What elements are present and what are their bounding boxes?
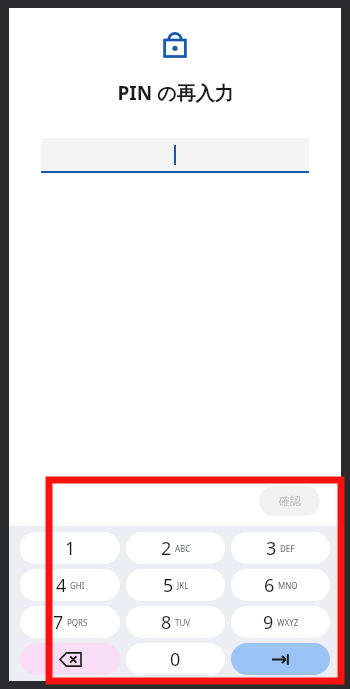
staticText: ABC	[175, 543, 191, 554]
button[interactable]: 0	[126, 643, 225, 675]
staticText: 9	[263, 610, 274, 635]
staticText: 2	[161, 536, 172, 561]
button[interactable]: 5	[126, 569, 225, 601]
button[interactable]: Delete	[20, 643, 120, 675]
button[interactable]: 6	[231, 569, 330, 601]
staticText: WXYZ	[277, 617, 299, 628]
button[interactable]: 8	[126, 606, 225, 638]
button[interactable]: 3	[231, 532, 330, 564]
staticText: 4	[56, 573, 67, 598]
button[interactable]: 1	[20, 532, 120, 564]
staticText: 6	[264, 573, 275, 598]
staticText: JKL	[177, 580, 189, 591]
staticText: 確認	[279, 494, 301, 508]
button[interactable]: 4	[20, 569, 120, 601]
button[interactable]	[41, 138, 309, 171]
button[interactable]: 2	[126, 532, 225, 564]
staticText: 0	[170, 647, 181, 672]
staticText: DEF	[280, 543, 295, 554]
staticText: 5	[163, 573, 174, 598]
staticText: PQRS	[67, 617, 88, 628]
button[interactable]: 9	[231, 606, 330, 638]
staticText: 3	[266, 536, 277, 561]
staticText: MNO	[278, 580, 298, 591]
button[interactable]: 確認	[259, 486, 320, 516]
staticText: 1	[65, 536, 76, 561]
staticText: PIN の再入力	[117, 80, 234, 106]
staticText: 7	[53, 610, 64, 635]
staticText: TUV	[175, 617, 191, 628]
staticText: GHI	[70, 580, 85, 591]
staticText: 8	[161, 610, 172, 635]
button[interactable]: Enter	[231, 643, 330, 675]
button[interactable]: 7	[20, 606, 120, 638]
